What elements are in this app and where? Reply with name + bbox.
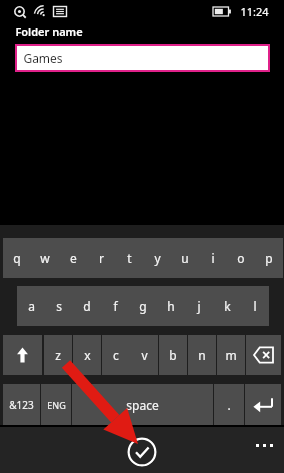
staticText: c bbox=[113, 347, 119, 363]
button[interactable]: y bbox=[143, 238, 171, 278]
staticText: i bbox=[211, 250, 215, 266]
button[interactable]: Backspace bbox=[246, 335, 281, 375]
staticText: Games bbox=[23, 50, 63, 66]
staticText: g bbox=[139, 298, 147, 314]
button[interactable]: c bbox=[102, 335, 130, 375]
staticText: ENG bbox=[47, 399, 66, 411]
button[interactable]: o bbox=[227, 238, 255, 278]
staticText: j bbox=[197, 298, 201, 314]
button[interactable]: d bbox=[73, 286, 101, 326]
button[interactable]: m bbox=[217, 335, 245, 375]
staticText: m bbox=[225, 347, 237, 363]
button[interactable]: l bbox=[241, 286, 269, 326]
staticText: &123 bbox=[9, 398, 34, 412]
staticText: space bbox=[126, 397, 159, 413]
staticText: b bbox=[169, 347, 177, 363]
button[interactable]: i bbox=[199, 238, 227, 278]
staticText: d bbox=[83, 298, 91, 314]
button[interactable]: space bbox=[72, 384, 213, 425]
staticText: a bbox=[28, 298, 35, 314]
button[interactable]: q bbox=[3, 238, 31, 278]
button[interactable]: Games bbox=[17, 46, 268, 70]
staticText: . bbox=[227, 397, 231, 413]
staticText: Folder name bbox=[15, 24, 83, 39]
button[interactable]: j bbox=[185, 286, 213, 326]
staticText: w bbox=[40, 250, 50, 266]
button[interactable]: r bbox=[87, 238, 115, 278]
staticText: r bbox=[99, 250, 104, 266]
button[interactable]: e bbox=[59, 238, 87, 278]
button[interactable]: Enter bbox=[245, 384, 281, 425]
staticText: h bbox=[167, 298, 175, 314]
button[interactable]: z bbox=[44, 335, 72, 375]
staticText: v bbox=[141, 347, 148, 363]
button[interactable]: u bbox=[171, 238, 199, 278]
staticText: f bbox=[113, 298, 118, 314]
button[interactable]: v bbox=[130, 335, 158, 375]
button[interactable]: w bbox=[31, 238, 59, 278]
button[interactable]: &123 bbox=[3, 384, 40, 425]
staticText: p bbox=[265, 250, 273, 266]
button[interactable]: . bbox=[214, 384, 244, 425]
button[interactable]: h bbox=[157, 286, 185, 326]
button[interactable]: p bbox=[255, 238, 283, 278]
staticText: s bbox=[56, 298, 62, 314]
button[interactable]: b bbox=[159, 335, 187, 375]
staticText: l bbox=[253, 298, 257, 314]
staticText: k bbox=[224, 298, 231, 314]
button[interactable]: ENG bbox=[41, 384, 71, 425]
staticText: 11:24 bbox=[240, 4, 269, 19]
staticText: y bbox=[154, 250, 161, 266]
button[interactable]: Accept bbox=[127, 437, 157, 467]
button[interactable]: x bbox=[73, 335, 101, 375]
staticText: n bbox=[198, 347, 206, 363]
staticText: q bbox=[13, 250, 21, 266]
staticText: z bbox=[55, 347, 61, 363]
button[interactable]: g bbox=[129, 286, 157, 326]
button[interactable]: f bbox=[101, 286, 129, 326]
staticText: o bbox=[237, 250, 245, 266]
button[interactable]: Shift bbox=[3, 335, 42, 375]
button[interactable]: a bbox=[17, 286, 45, 326]
button[interactable]: k bbox=[213, 286, 241, 326]
button[interactable]: s bbox=[45, 286, 73, 326]
staticText: e bbox=[70, 250, 77, 266]
button[interactable]: t bbox=[115, 238, 143, 278]
staticText: u bbox=[181, 250, 189, 266]
staticText: t bbox=[127, 250, 132, 266]
staticText: x bbox=[84, 347, 91, 363]
button[interactable]: More options bbox=[250, 435, 278, 455]
button[interactable]: n bbox=[188, 335, 216, 375]
